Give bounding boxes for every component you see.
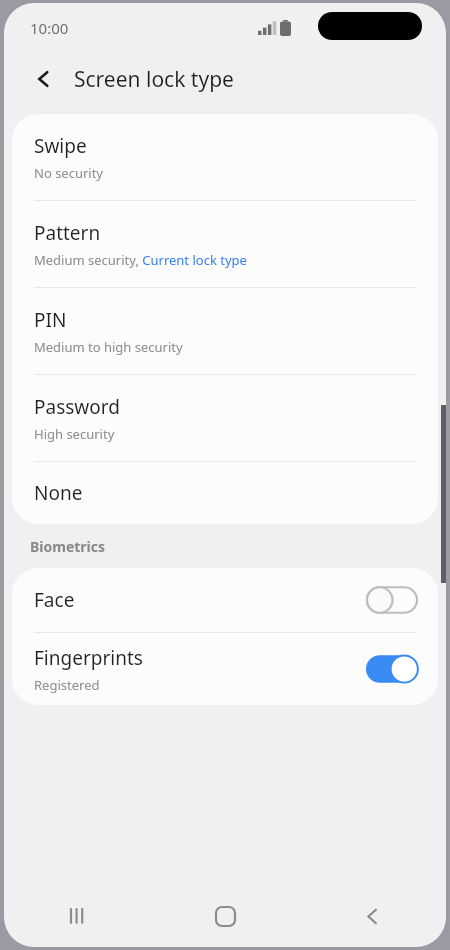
staticText: Face [34,587,75,613]
staticText: PIN [34,307,67,333]
staticText: Medium security, Current lock type [34,251,247,269]
button[interactable]: None [12,462,438,524]
staticText: Medium to high security [34,338,183,356]
button[interactable]: Back [299,885,446,947]
button[interactable]: Fingerprints toggle [366,653,418,685]
button[interactable]: Home [152,885,299,947]
staticText: Swipe [34,133,87,159]
staticText: Pattern [34,220,101,246]
staticText: No security [34,164,104,182]
staticText: Password [34,394,120,420]
staticText: Biometrics [30,537,106,556]
button[interactable]: Face unlock toggle [366,584,418,616]
staticText: None [34,480,83,506]
button[interactable]: Back [28,63,60,95]
staticText: Fingerprints [34,645,143,671]
staticText: Screen lock type [74,65,234,94]
staticText: High security [34,425,115,443]
staticText: 10:00 [30,18,69,38]
button[interactable]: Recent apps [4,885,152,947]
button[interactable]: PIN [12,288,438,374]
button[interactable]: Pattern [12,201,438,287]
button[interactable]: Fingerprints [12,633,438,705]
staticText: Registered [34,676,100,694]
button[interactable]: Swipe [12,114,438,200]
button[interactable]: Face [12,568,438,632]
button[interactable]: Password [12,375,438,461]
